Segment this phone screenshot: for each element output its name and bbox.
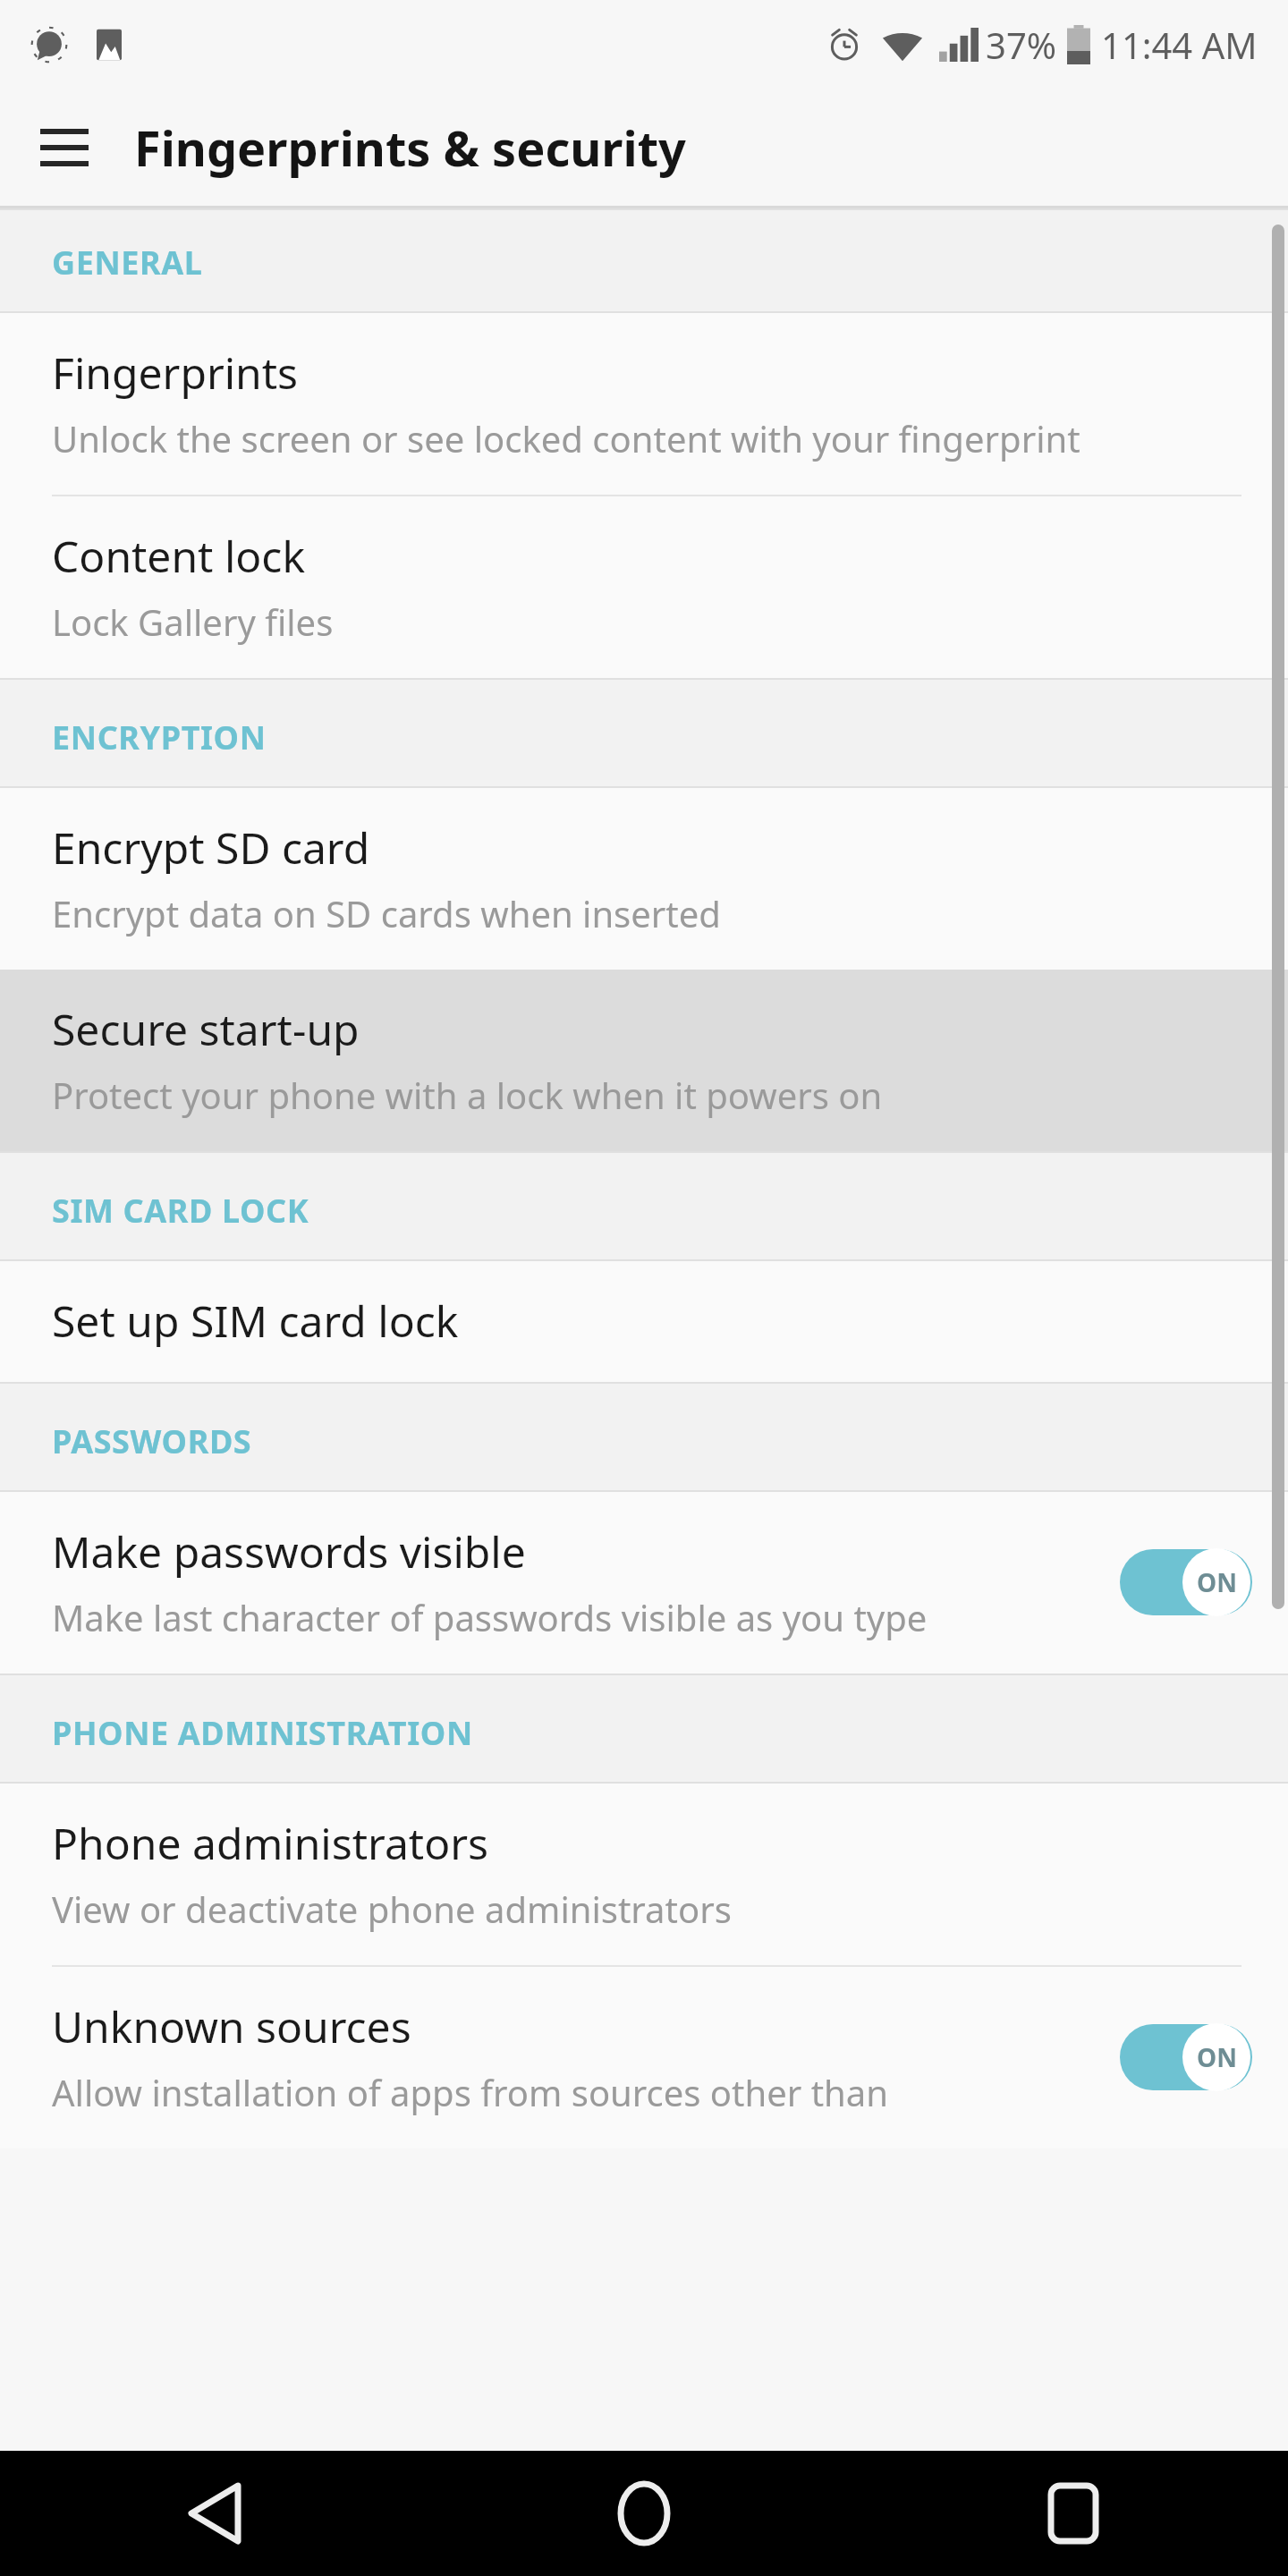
staticText: Fingerprints <box>52 343 299 402</box>
staticText: SIM CARD LOCK <box>52 1189 309 1233</box>
staticText: Secure start-up <box>52 1000 360 1058</box>
staticText: 11:44 AM <box>1101 21 1258 69</box>
button[interactable]: Toggle on <box>1120 1546 1252 1619</box>
staticText: PHONE ADMINISTRATION <box>52 1711 473 1755</box>
button[interactable]: Unknown sources <box>0 1967 1288 2148</box>
staticText: Set up SIM card lock <box>52 1292 459 1350</box>
staticText: ON <box>1197 2040 1237 2074</box>
staticText: 37% <box>986 21 1056 69</box>
staticText: GENERAL <box>52 241 203 284</box>
staticText: Make passwords visible <box>52 1522 526 1580</box>
staticText: View or deactivate phone administrators <box>52 1885 732 1933</box>
staticText: Unlock the screen or see locked content … <box>52 414 1080 462</box>
button[interactable]: Home <box>586 2455 702 2572</box>
button[interactable]: Recent apps <box>1015 2455 1131 2572</box>
staticText: Content lock <box>52 527 306 585</box>
staticText: ENCRYPTION <box>52 716 267 759</box>
staticText: Fingerprints & security <box>134 114 686 181</box>
staticText: Allow installation of apps from sources … <box>52 2068 888 2116</box>
button[interactable]: Fingerprints <box>0 313 1288 495</box>
button[interactable]: Back <box>157 2455 273 2572</box>
staticText: PASSWORDS <box>52 1419 252 1463</box>
staticText: Encrypt SD card <box>52 818 370 877</box>
staticText: Unknown sources <box>52 1997 411 2055</box>
staticText: Encrypt data on SD cards when inserted <box>52 889 721 937</box>
button[interactable]: Secure start-up <box>0 970 1288 1151</box>
staticText: Lock Gallery files <box>52 597 334 646</box>
staticText: Protect your phone with a lock when it p… <box>52 1071 883 1119</box>
button[interactable]: Make passwords visible <box>0 1492 1288 1674</box>
staticText: Phone administrators <box>52 1814 489 1872</box>
staticText: Make last character of passwords visible… <box>52 1593 928 1641</box>
staticText: ON <box>1197 1565 1237 1599</box>
button[interactable]: Toggle on <box>1120 2021 1252 2094</box>
button[interactable]: Set up SIM card lock <box>0 1261 1288 1382</box>
button[interactable]: Encrypt SD card <box>0 788 1288 970</box>
button[interactable]: Content lock <box>0 496 1288 678</box>
button[interactable]: Open navigation menu <box>20 103 109 192</box>
button[interactable]: Phone administrators <box>0 1784 1288 1965</box>
